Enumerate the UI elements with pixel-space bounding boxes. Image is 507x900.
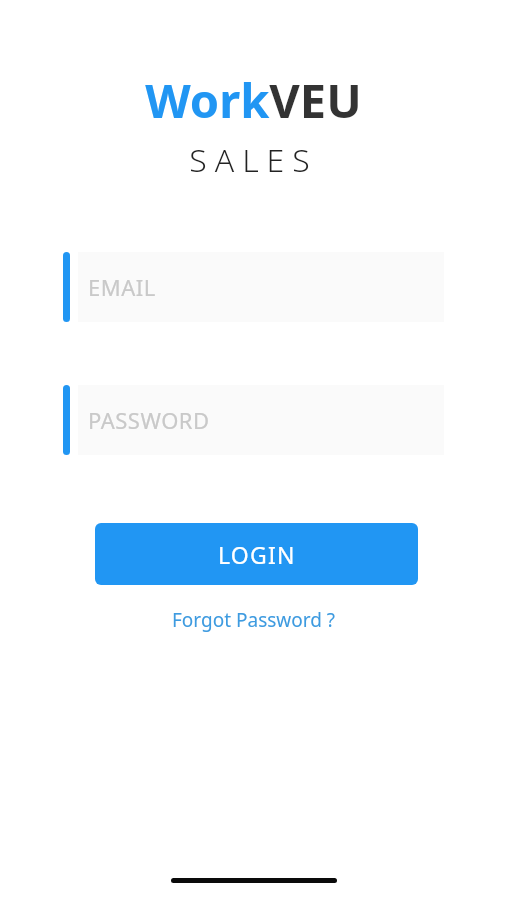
- button[interactable]: PASSWORD: [63, 385, 444, 455]
- staticText: LOGIN: [218, 539, 296, 570]
- staticText: WorkVEU: [145, 68, 362, 132]
- button[interactable]: LOGIN: [95, 523, 418, 585]
- button[interactable]: Forgot Password ?: [164, 603, 344, 637]
- staticText: PASSWORD: [88, 405, 210, 435]
- staticText: EMAIL: [88, 272, 156, 302]
- button[interactable]: EMAIL: [63, 252, 444, 322]
- staticText: Forgot Password ?: [172, 607, 336, 633]
- staticText: SALES: [189, 138, 318, 182]
